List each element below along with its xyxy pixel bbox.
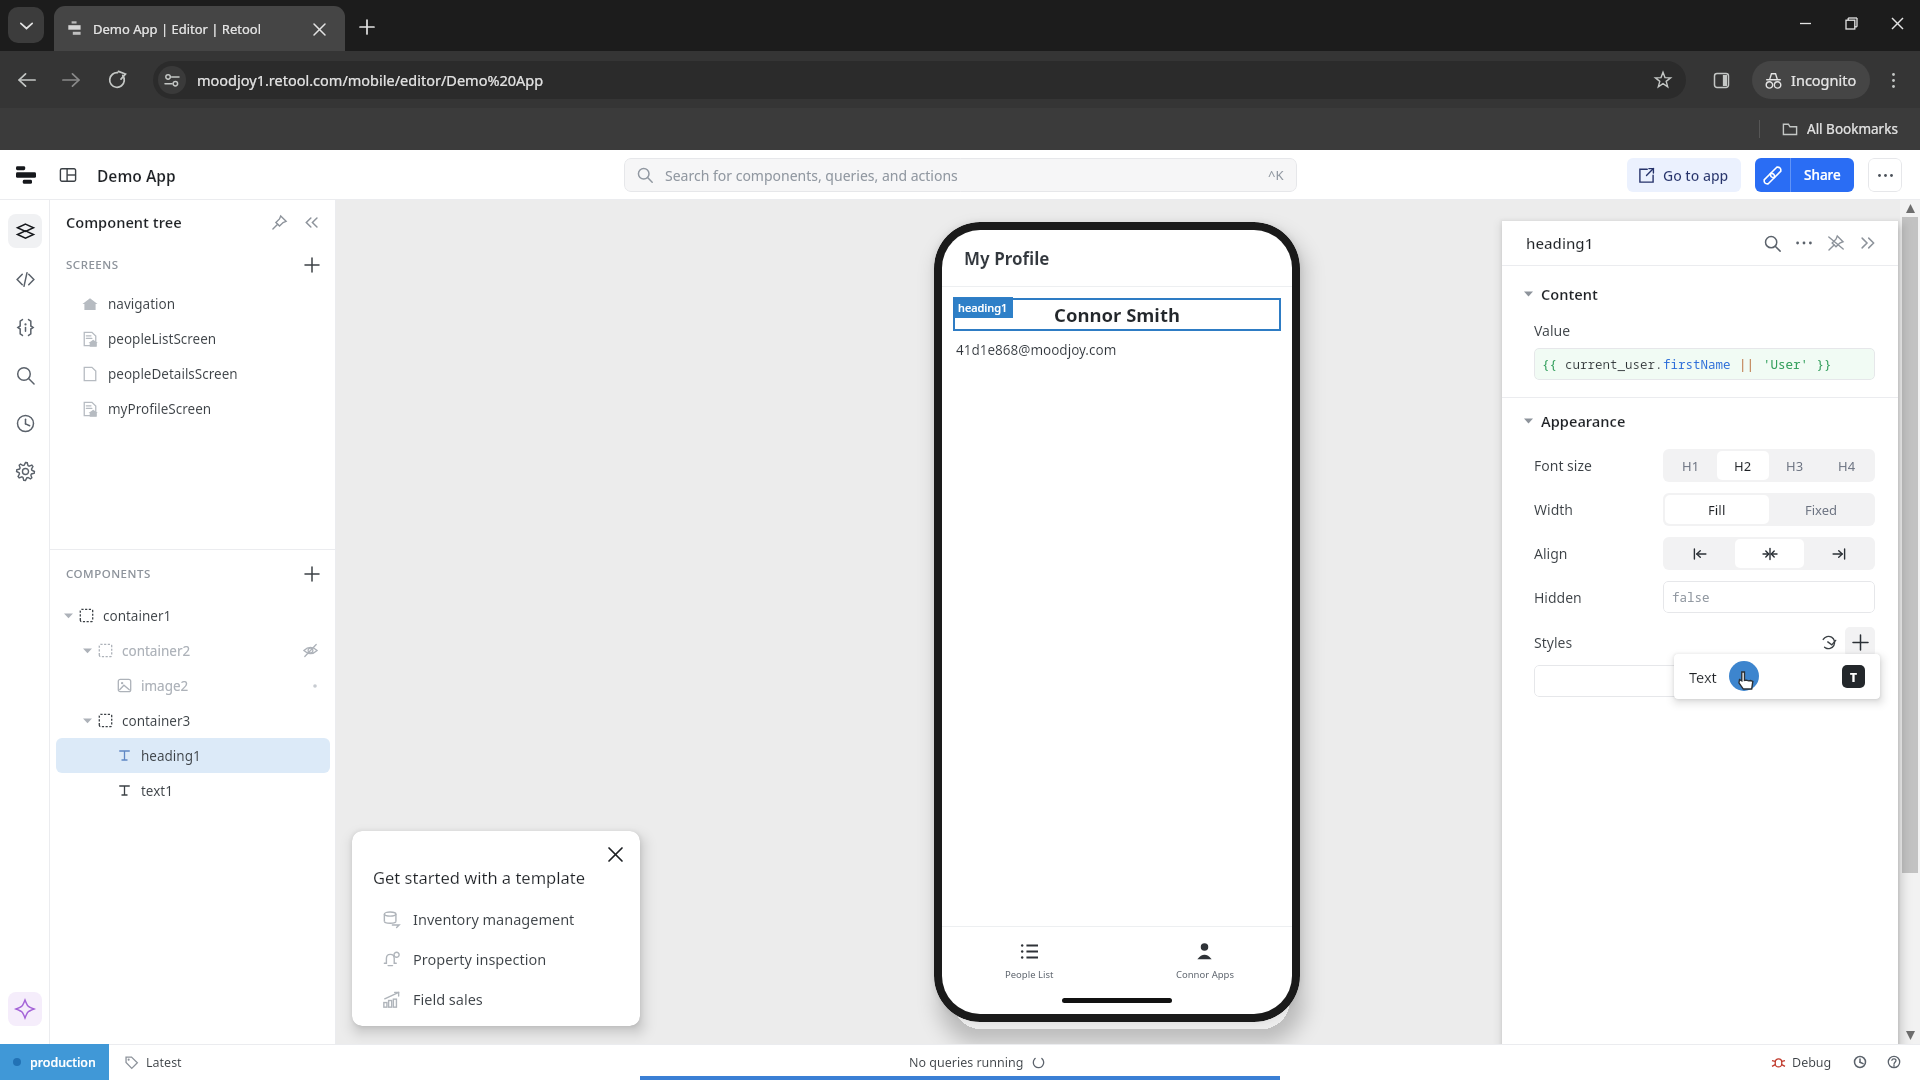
staticText: H1: [1682, 457, 1700, 475]
button[interactable]: H3: [1769, 451, 1821, 480]
staticText: COMPONENTS: [66, 566, 151, 582]
staticText: ^K: [1268, 166, 1284, 184]
staticText: container3: [122, 712, 191, 730]
staticText: Latest: [146, 1054, 182, 1071]
button[interactable]: Inventory management: [373, 899, 640, 939]
button[interactable]: Search: [8, 358, 42, 392]
button[interactable]: Demo App | Editor | Retool: [54, 6, 345, 51]
staticText: }}: [1809, 356, 1832, 373]
button[interactable]: People List: [942, 937, 1117, 986]
staticText: Appearance: [1541, 411, 1626, 431]
button[interactable]: Collapse: [1852, 227, 1884, 259]
button[interactable]: Add style: [1845, 627, 1875, 657]
staticText: My Profile: [964, 247, 1050, 270]
button[interactable]: myProfileScreen: [58, 391, 328, 426]
button[interactable]: Connor Apps: [1117, 937, 1292, 986]
button[interactable]: AI assistant: [8, 992, 42, 1026]
button[interactable]: Incognito: [1752, 61, 1870, 99]
staticText: Field sales: [413, 989, 483, 1009]
staticText: Get started with a template: [373, 866, 586, 888]
button[interactable]: Styles value: [1534, 665, 1875, 697]
button[interactable]: Fixed: [1769, 495, 1873, 524]
button[interactable]: Toggle panel: [53, 160, 83, 190]
button[interactable]: More options: [1868, 158, 1902, 192]
button[interactable]: More: [1788, 227, 1820, 259]
button[interactable]: H4: [1821, 451, 1873, 480]
staticText: No queries running: [909, 1054, 1024, 1071]
button[interactable]: More: [1874, 61, 1912, 99]
button[interactable]: Collapse panel: [298, 209, 324, 235]
button[interactable]: State: [8, 310, 42, 344]
button[interactable]: Debug: [1772, 1054, 1832, 1071]
button[interactable]: Close: [604, 843, 626, 865]
button[interactable]: Fill: [1665, 495, 1769, 524]
button[interactable]: Components: [8, 214, 42, 248]
button[interactable]: Search for components, queries, and acti…: [624, 158, 1297, 192]
button[interactable]: Connor Smith: [953, 298, 1281, 331]
button[interactable]: Bookmark this tab: [1648, 65, 1678, 95]
button[interactable]: {{: [1534, 348, 1875, 380]
button[interactable]: History: [1848, 1050, 1872, 1074]
button[interactable]: Help: [1882, 1050, 1906, 1074]
staticText: Property inspection: [413, 949, 547, 969]
button[interactable]: Field sales: [373, 979, 640, 1019]
button[interactable]: Retool home: [11, 160, 41, 190]
button[interactable]: Back: [8, 61, 46, 99]
button[interactable]: Settings: [8, 454, 42, 488]
button[interactable]: Align right: [1804, 539, 1873, 568]
button[interactable]: Pin panel: [266, 209, 292, 235]
button[interactable]: Property inspection: [373, 939, 640, 979]
button[interactable]: Minimize: [1782, 0, 1828, 46]
button[interactable]: Unpin: [1820, 227, 1852, 259]
staticText: container2: [122, 642, 191, 660]
button[interactable]: Text: [1674, 654, 1880, 699]
button[interactable]: Close window: [1874, 0, 1920, 46]
button[interactable]: Go to app: [1627, 158, 1741, 192]
staticText: Styles: [1534, 633, 1573, 652]
button[interactable]: Side panel: [1702, 61, 1740, 99]
button[interactable]: Copy link: [1755, 158, 1790, 192]
button[interactable]: Close tab: [306, 16, 332, 42]
staticText: Content: [1541, 284, 1598, 304]
button[interactable]: H2: [1717, 451, 1769, 480]
button[interactable]: false: [1663, 581, 1875, 613]
button[interactable]: Add screen: [300, 253, 324, 277]
staticText: Connor Apps: [1176, 968, 1234, 981]
staticText: H4: [1838, 457, 1856, 475]
staticText: Go to app: [1663, 166, 1729, 185]
staticText: {{: [1542, 356, 1565, 373]
button[interactable]: Align center: [1735, 539, 1804, 568]
button[interactable]: heading1: [56, 738, 330, 773]
button[interactable]: container2: [56, 633, 330, 668]
staticText: Demo App | Editor | Retool: [93, 20, 262, 38]
button[interactable]: Forward: [52, 61, 90, 99]
button[interactable]: text1: [56, 773, 330, 808]
button[interactable]: History: [8, 406, 42, 440]
button[interactable]: Align left: [1665, 539, 1735, 568]
staticText: Align: [1534, 544, 1568, 563]
button[interactable]: Search tabs: [8, 7, 44, 43]
button[interactable]: Search: [1756, 227, 1788, 259]
button[interactable]: peopleListScreen: [58, 321, 328, 356]
button[interactable]: production: [0, 1044, 109, 1080]
button[interactable]: Add component: [300, 562, 324, 586]
button[interactable]: All Bookmarks: [1778, 115, 1902, 143]
button[interactable]: peopleDetailsScreen: [58, 356, 328, 391]
button[interactable]: moodjoy1.retool.com/mobile/editor/Demo%2…: [153, 61, 1686, 99]
button[interactable]: Reset styles: [1815, 629, 1841, 655]
button[interactable]: container3: [56, 703, 330, 738]
button[interactable]: Share: [1791, 158, 1854, 192]
button[interactable]: Code: [8, 262, 42, 296]
button[interactable]: H1: [1665, 451, 1717, 480]
staticText: text1: [141, 782, 173, 800]
button[interactable]: image2: [56, 668, 330, 703]
button[interactable]: Latest: [125, 1054, 182, 1071]
staticText: current_user.: [1565, 356, 1663, 373]
staticText: Font size: [1534, 456, 1592, 475]
button[interactable]: navigation: [58, 286, 328, 321]
button[interactable]: Reload: [98, 61, 136, 99]
button[interactable]: Maximize: [1828, 0, 1874, 46]
button[interactable]: New tab: [352, 12, 382, 42]
button[interactable]: container1: [56, 598, 330, 633]
